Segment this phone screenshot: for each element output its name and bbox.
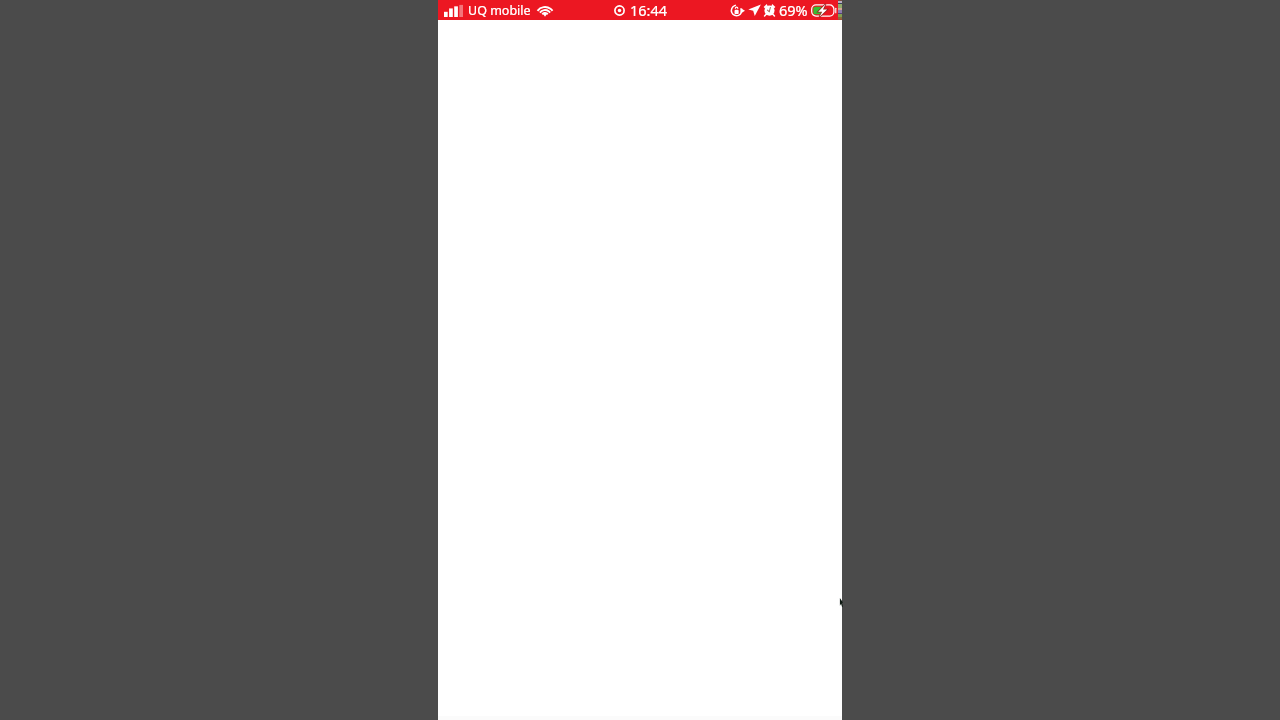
staticText: 69% xyxy=(779,0,808,20)
other: Wi-Fi connected xyxy=(536,3,554,17)
other: Screen rotation locked xyxy=(731,4,744,17)
other: Mobile signal strength xyxy=(444,4,463,17)
other: Screen recording xyxy=(614,5,625,16)
other: Battery 69 percent, charging xyxy=(811,4,836,17)
other: Alarm set xyxy=(764,4,775,16)
staticText: UQ mobile xyxy=(468,2,531,19)
other: Location in use xyxy=(748,4,761,16)
staticText: 16:44 xyxy=(630,0,668,20)
button[interactable]: Status bar, open notification shade xyxy=(438,0,842,20)
